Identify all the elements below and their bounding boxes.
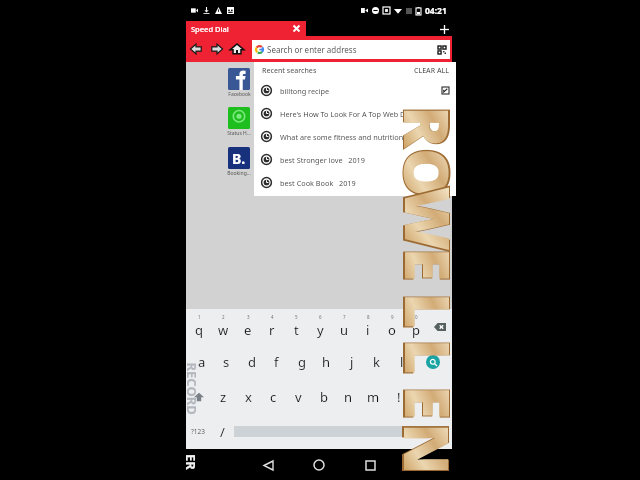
- button[interactable]: k: [364, 344, 389, 379]
- staticText: c: [270, 388, 277, 406]
- button[interactable]: B.: [224, 147, 254, 177]
- button[interactable]: best Stronger love 2019: [254, 148, 456, 171]
- staticText: L: [383, 291, 452, 330]
- staticText: L: [386, 292, 452, 329]
- staticText: Search or enter address: [267, 44, 438, 55]
- staticText: CLEAR ALL: [414, 66, 449, 76]
- staticText: 4: [271, 314, 274, 320]
- staticText: h: [322, 353, 331, 371]
- staticText: k: [373, 353, 380, 371]
- button[interactable]: !: [386, 379, 411, 414]
- staticText: ?123: [191, 427, 205, 436]
- button[interactable]: 7: [332, 309, 356, 344]
- staticText: E: [383, 246, 452, 283]
- button[interactable]: CLEAR ALL: [414, 66, 449, 76]
- staticText: N: [386, 423, 452, 475]
- button[interactable]: m: [361, 379, 386, 414]
- other: Insert query: [442, 87, 449, 94]
- staticText: O: [386, 148, 452, 198]
- button[interactable]: b: [311, 379, 336, 414]
- button[interactable]: Backspace: [428, 309, 452, 344]
- staticText: q: [195, 321, 203, 339]
- button[interactable]: New tab: [437, 22, 451, 36]
- staticText: billtong recipe: [280, 86, 442, 96]
- button[interactable]: 2: [211, 309, 236, 344]
- staticText: N: [383, 421, 452, 477]
- staticText: t: [294, 321, 299, 339]
- button[interactable]: Back: [255, 452, 281, 478]
- button[interactable]: 1: [186, 309, 211, 344]
- staticText: 04:21: [425, 5, 447, 17]
- button[interactable]: /: [210, 414, 234, 449]
- staticText: v: [295, 388, 302, 406]
- button[interactable]: Status H...: [224, 107, 254, 137]
- staticText: 8: [367, 314, 370, 320]
- staticText: R: [383, 104, 452, 149]
- staticText: g: [298, 353, 306, 371]
- button[interactable]: Home: [306, 452, 332, 478]
- button[interactable]: Home: [228, 40, 246, 58]
- button[interactable]: Back: [187, 40, 205, 58]
- staticText: m: [367, 388, 380, 406]
- button[interactable]: j: [339, 344, 364, 379]
- button[interactable]: d: [239, 344, 264, 379]
- button[interactable]: Here's How To Look For A Top Web De: [254, 102, 456, 125]
- staticText: O: [383, 146, 452, 199]
- button[interactable]: Facebook: [224, 68, 254, 98]
- button[interactable]: Shift: [186, 379, 211, 414]
- staticText: E: [386, 385, 452, 420]
- button[interactable]: a: [189, 344, 214, 379]
- staticText: i: [366, 321, 370, 339]
- button[interactable]: l: [389, 344, 414, 379]
- staticText: W: [383, 184, 452, 253]
- staticText: What are some fitness and nutrition hac: [280, 132, 449, 142]
- staticText: W: [386, 186, 452, 251]
- staticText: f: [274, 353, 279, 371]
- staticText: ER: [186, 454, 200, 470]
- button[interactable]: 6: [308, 309, 332, 344]
- button[interactable]: What are some fitness and nutrition hac: [254, 125, 456, 148]
- button[interactable]: s: [214, 344, 239, 379]
- button[interactable]: 3: [236, 309, 260, 344]
- staticText: 2: [222, 314, 225, 320]
- button[interactable]: 8: [356, 309, 380, 344]
- staticText: B.: [232, 149, 246, 168]
- button[interactable]: v: [286, 379, 311, 414]
- staticText: y: [317, 321, 324, 339]
- button[interactable]: 0: [404, 309, 428, 344]
- button[interactable]: best Cook Book 2019: [254, 171, 456, 194]
- staticText: b: [320, 388, 328, 406]
- button[interactable]: billtong recipe: [254, 79, 456, 102]
- button[interactable]: h: [314, 344, 339, 379]
- button[interactable]: c: [261, 379, 286, 414]
- button[interactable]: g: [289, 344, 314, 379]
- staticText: 3: [247, 314, 250, 320]
- staticText: !: [397, 388, 401, 406]
- staticText: n: [344, 388, 353, 406]
- staticText: /: [220, 423, 225, 441]
- button[interactable]: x: [236, 379, 261, 414]
- button[interactable]: Close tab: [291, 23, 302, 34]
- button[interactable]: Search or enter address: [252, 40, 450, 59]
- button[interactable]: Speed Dial: [186, 21, 306, 36]
- button[interactable]: Search: [414, 344, 452, 379]
- button[interactable]: n: [336, 379, 361, 414]
- staticText: best Cook Book 2019: [280, 178, 449, 188]
- button[interactable]: ?123: [186, 414, 210, 449]
- staticText: r: [269, 321, 275, 339]
- staticText: Speed Dial: [191, 24, 291, 34]
- button[interactable]: Forward: [208, 40, 226, 58]
- staticText: e: [244, 321, 252, 339]
- button[interactable]: 9: [380, 309, 404, 344]
- button[interactable]: 4: [260, 309, 284, 344]
- button[interactable]: 5: [284, 309, 308, 344]
- staticText: 0: [415, 314, 418, 320]
- button[interactable]: f: [264, 344, 289, 379]
- staticText: Recent searches: [262, 66, 414, 76]
- button[interactable]: z: [211, 379, 236, 414]
- button[interactable]: Recents: [357, 452, 383, 478]
- staticText: a: [198, 353, 206, 371]
- staticText: Status H...: [227, 130, 251, 137]
- staticText: 5: [295, 314, 298, 320]
